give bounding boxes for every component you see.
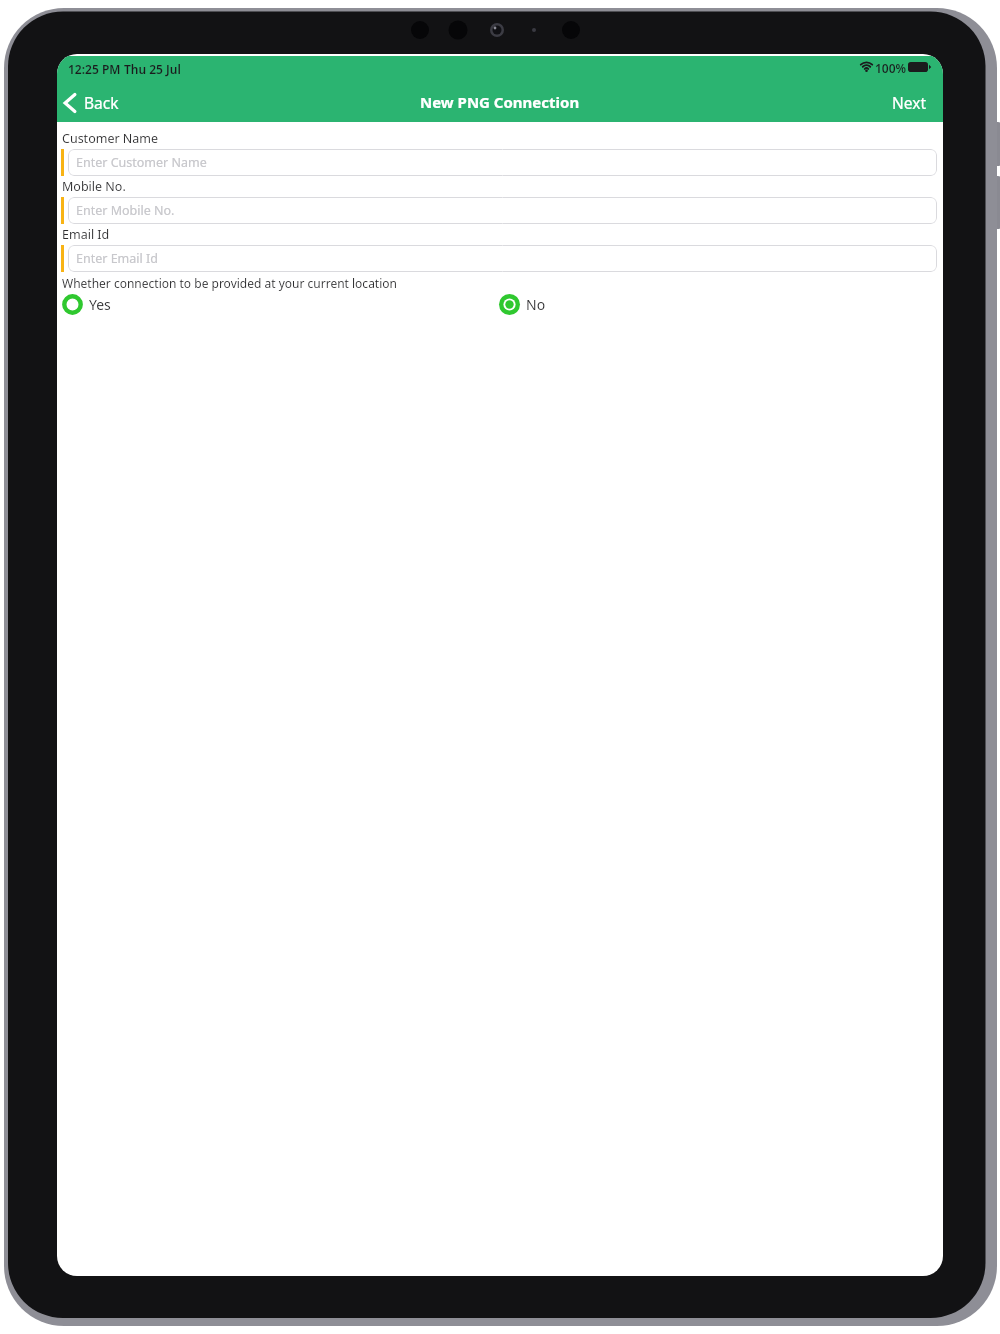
staticText: No — [526, 295, 546, 314]
button[interactable]: Next — [892, 92, 927, 113]
staticText: 100% — [875, 60, 907, 76]
button[interactable]: Back — [63, 85, 119, 119]
staticText: Back — [84, 92, 119, 113]
staticText: Next — [892, 92, 927, 113]
staticText: Mobile No. — [62, 178, 126, 195]
staticText: 12:25 PM — [68, 61, 121, 77]
staticText: Thu 25 Jul — [124, 61, 181, 77]
staticText: Whether connection to be provided at you… — [62, 275, 397, 291]
button[interactable]: Enter Customer Name — [68, 149, 937, 176]
button[interactable]: Enter Mobile No. — [68, 197, 937, 224]
staticText: Enter Email Id — [76, 250, 158, 267]
staticText: Enter Customer Name — [76, 154, 207, 171]
button[interactable]: Enter Email Id — [68, 245, 937, 272]
staticText: Enter Mobile No. — [76, 202, 175, 219]
staticText: Customer Name — [62, 130, 159, 147]
button[interactable]: Yes — [62, 294, 111, 315]
staticText: Email Id — [62, 226, 110, 243]
staticText: New PNG Connection — [420, 92, 580, 112]
button[interactable]: No — [499, 294, 546, 315]
staticText: Yes — [89, 295, 111, 314]
